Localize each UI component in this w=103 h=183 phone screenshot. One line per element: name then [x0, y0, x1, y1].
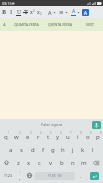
- button[interactable]: k: [78, 143, 88, 156]
- staticText: v: [49, 159, 53, 167]
- staticText: ≡: [59, 9, 64, 15]
- button[interactable]: j: [68, 143, 78, 156]
- button[interactable]: l: [88, 143, 98, 156]
- staticText: 8: [80, 131, 82, 135]
- button[interactable]: x: [23, 156, 34, 169]
- staticText: f: [42, 146, 45, 154]
- button[interactable]: 5: [43, 130, 53, 143]
- button[interactable]: Underline: [15, 7, 22, 17]
- staticText: 08:15: [2, 1, 12, 6]
- button[interactable]: 6: [53, 130, 63, 143]
- staticText: l: [92, 146, 94, 154]
- button[interactable]: h: [58, 143, 68, 156]
- button[interactable]: g: [48, 143, 58, 156]
- staticText: q: [4, 133, 8, 141]
- staticText: h: [61, 146, 65, 154]
- button[interactable]: d: [27, 143, 38, 156]
- staticText: 7: [70, 131, 72, 135]
- button[interactable]: a: [5, 143, 16, 156]
- staticText: k: [81, 146, 85, 154]
- button[interactable]: Subscript: [36, 7, 43, 17]
- button[interactable]: Voice input: [92, 121, 101, 129]
- staticText: 0: [100, 131, 102, 135]
- button[interactable]: Period: [76, 169, 86, 182]
- button[interactable]: c: [34, 156, 45, 169]
- staticText: n: [71, 159, 75, 167]
- staticText: ,: [19, 175, 21, 181]
- button[interactable]: b: [56, 156, 67, 169]
- button[interactable]: Superscript: [29, 7, 36, 17]
- staticText: g: [51, 146, 55, 154]
- button[interactable]: Enter: [90, 172, 99, 180]
- staticText: .: [80, 173, 82, 179]
- button[interactable]: Alignment: [58, 7, 70, 17]
- staticText: 2: [33, 9, 35, 13]
- staticText: s: [20, 146, 23, 154]
- button[interactable]: 8: [73, 130, 83, 143]
- button[interactable]: s: [16, 143, 27, 156]
- staticText: PT-BR · EN: [48, 174, 62, 178]
- staticText: QUARTA-FEIRA: [14, 22, 39, 27]
- button[interactable]: Strikethrough: [22, 7, 29, 17]
- staticText: b: [60, 159, 64, 167]
- button[interactable]: QUINTA-FEIRA: [43, 18, 77, 31]
- button[interactable]: 3: [22, 130, 33, 143]
- staticText: u: [66, 133, 70, 141]
- staticText: A: [48, 9, 52, 16]
- staticText: A: [84, 10, 87, 16]
- staticText: w: [14, 133, 19, 141]
- button[interactable]: Comma: [15, 169, 24, 182]
- button[interactable]: Bold: [1, 7, 8, 17]
- staticText: 2: [19, 131, 21, 135]
- button[interactable]: SEXT: [77, 18, 103, 31]
- staticText: B: [2, 8, 7, 16]
- button[interactable]: Space: [35, 172, 75, 180]
- staticText: A: [3, 22, 6, 27]
- button[interactable]: n: [67, 156, 78, 169]
- staticText: d: [31, 146, 35, 154]
- button[interactable]: 9: [83, 130, 93, 143]
- button[interactable]: m: [78, 156, 89, 169]
- staticText: 3: [30, 131, 32, 135]
- button[interactable]: Italic: [8, 7, 15, 17]
- staticText: x: [30, 9, 33, 16]
- button[interactable]: A: [0, 18, 9, 31]
- staticText: x: [27, 159, 31, 167]
- button[interactable]: Shift: [0, 156, 13, 169]
- staticText: t: [47, 133, 50, 141]
- button[interactable]: ?123: [1, 169, 15, 182]
- staticText: y: [56, 133, 60, 141]
- button[interactable]: 7: [63, 130, 73, 143]
- staticText: 2: [40, 12, 42, 16]
- staticText: Falar agora: [41, 122, 63, 127]
- button[interactable]: Font size: [46, 7, 58, 17]
- button[interactable]: f: [38, 143, 48, 156]
- button[interactable]: z: [13, 156, 23, 169]
- staticText: 6: [60, 131, 62, 135]
- staticText: x: [37, 9, 40, 16]
- staticText: e: [26, 133, 30, 141]
- staticText: T: [24, 8, 28, 16]
- button[interactable]: 2: [11, 130, 22, 143]
- staticText: 9: [90, 131, 92, 135]
- staticText: SEXT: [86, 22, 94, 27]
- button[interactable]: Text color: [70, 7, 82, 17]
- button[interactable]: v: [45, 156, 56, 169]
- button[interactable]: 1: [0, 130, 11, 143]
- button[interactable]: QUARTA-FEIRA: [9, 18, 43, 31]
- staticText: o: [86, 133, 90, 141]
- staticText: m: [81, 159, 87, 167]
- staticText: ?123: [4, 173, 13, 178]
- staticText: j: [72, 146, 74, 154]
- staticText: p: [96, 133, 100, 141]
- button[interactable]: Highlight color: [82, 9, 89, 16]
- staticText: r: [37, 133, 40, 141]
- staticText: U: [17, 8, 21, 15]
- button[interactable]: 0: [93, 130, 103, 143]
- staticText: QUINTA-FEIRA: [48, 22, 72, 27]
- button[interactable]: 4: [33, 130, 43, 143]
- button[interactable]: Change language: [24, 169, 34, 182]
- staticText: I: [10, 8, 13, 16]
- staticText: c: [38, 159, 41, 167]
- button[interactable]: Backspace: [89, 156, 103, 169]
